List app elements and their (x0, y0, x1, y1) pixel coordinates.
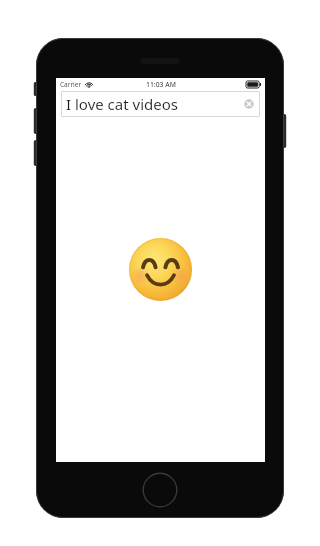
button[interactable]: I love cat videos (61, 91, 260, 117)
button[interactable]: Clear text (243, 98, 255, 110)
button[interactable]: Home (142, 472, 178, 508)
staticText: I love cat videos (66, 94, 178, 114)
staticText: 11:03 AM (146, 80, 176, 89)
staticText: Carrier (60, 80, 82, 89)
